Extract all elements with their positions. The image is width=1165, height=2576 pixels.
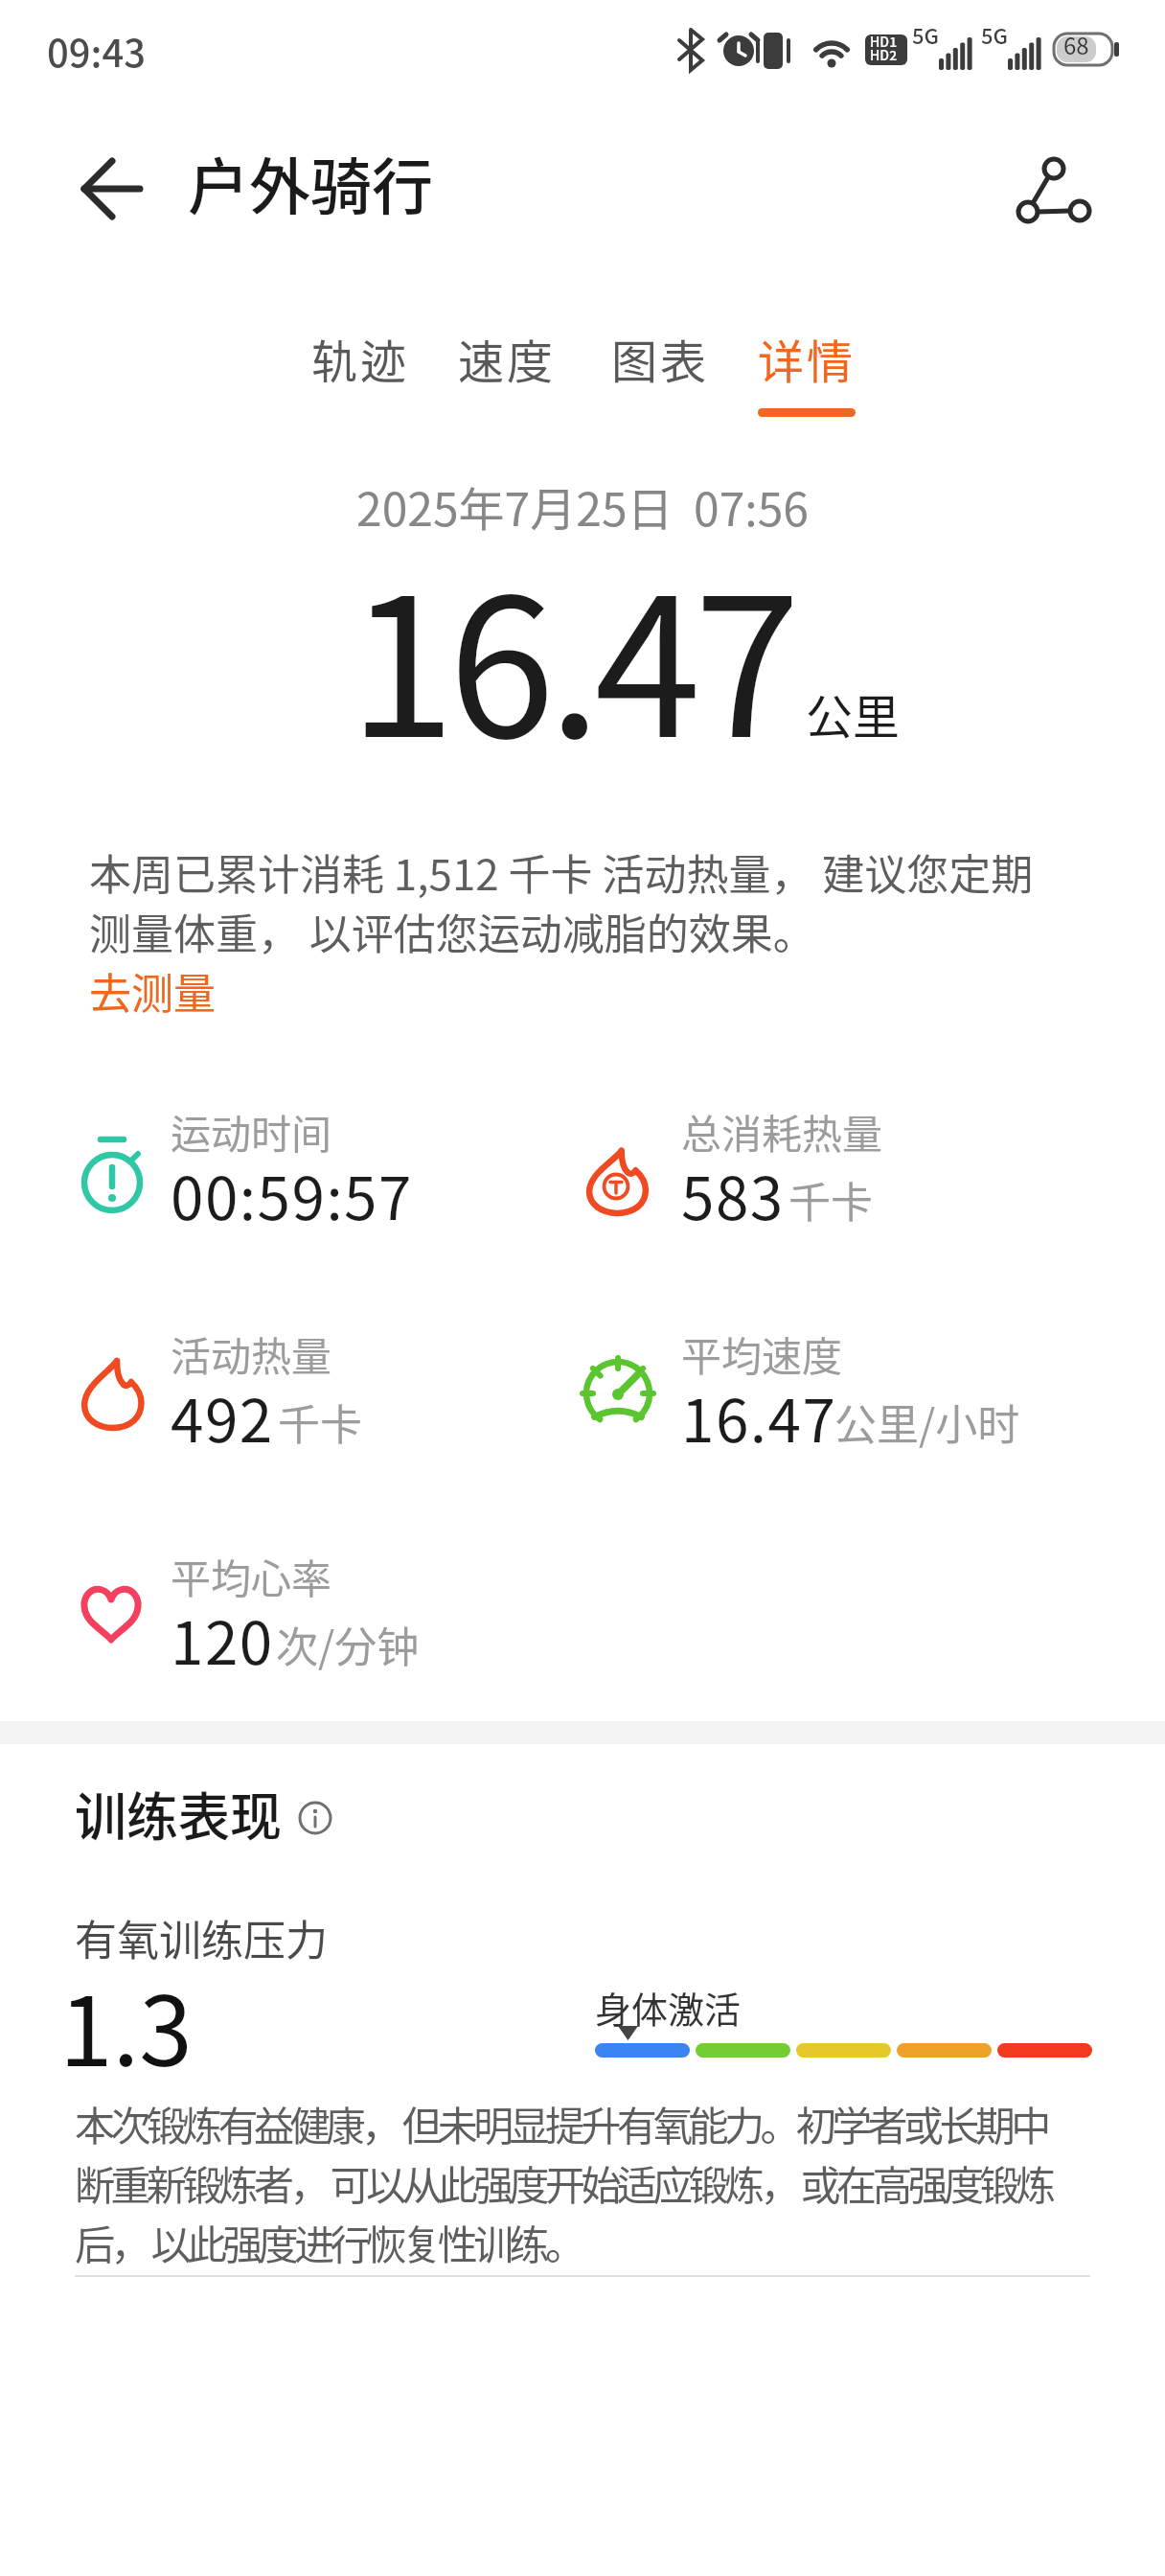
staticText: 公里/小时 <box>834 1391 1020 1453</box>
staticText: 5G <box>981 19 1008 50</box>
staticText: 平均心率 <box>171 1547 332 1605</box>
staticText: 本次锻炼有益健康， 但未明显提升有氧能力。初学者或长期中 <box>75 2094 1047 2152</box>
staticText: HD1 <box>870 32 898 51</box>
staticText: 平均速度 <box>681 1324 843 1383</box>
staticText: 2025年7月25日 07:56 <box>0 472 1165 540</box>
button[interactable] <box>987 134 1102 240</box>
button[interactable]: 去测量 <box>84 954 228 1012</box>
staticText: 断重新锻炼者， 可以从此强度开始适应锻炼， 或在高强度锻炼 <box>75 2153 1052 2212</box>
button[interactable] <box>57 144 163 240</box>
staticText: 详情 <box>758 325 857 392</box>
staticText: 16.47 <box>349 515 794 793</box>
staticText: 后， 以此强度进行恢复性训练。 <box>75 2213 582 2271</box>
button[interactable]: 速度 <box>439 311 575 422</box>
staticText: 5G <box>912 19 939 50</box>
staticText: 583 <box>681 1151 785 1237</box>
button[interactable] <box>287 1788 347 1848</box>
staticText: 120 <box>171 1596 274 1682</box>
staticText: 训练表现 <box>75 1776 282 1851</box>
staticText: 00:59:57 <box>171 1151 413 1237</box>
staticText: 本周已累计消耗 1,512 千卡 活动热量， 建议您定期 <box>89 841 1034 903</box>
staticText: 测量体重， 以评估您运动减脂的效果。 <box>89 901 815 962</box>
staticText: 68 <box>1063 28 1089 61</box>
staticText: HD2 <box>870 45 898 64</box>
staticText: 次/分钟 <box>276 1614 420 1675</box>
staticText: 速度 <box>458 325 557 392</box>
staticText: 去测量 <box>89 960 216 1018</box>
staticText: 有氧训练压力 <box>75 1907 328 1968</box>
button[interactable]: 详情 <box>739 311 875 422</box>
staticText: 图表 <box>611 325 710 392</box>
staticText: 千卡 <box>278 1391 362 1453</box>
staticText: 运动时间 <box>171 1102 332 1161</box>
staticText: 轨迹 <box>311 325 410 392</box>
staticText: 千卡 <box>788 1169 873 1230</box>
staticText: 总消耗热量 <box>681 1102 883 1161</box>
staticText: 身体激活 <box>595 1981 742 2034</box>
staticText: 16.47 <box>681 1373 837 1460</box>
staticText: 活动热量 <box>171 1324 332 1383</box>
staticText: 1.3 <box>59 1955 193 2094</box>
staticText: 户外骑行 <box>188 138 433 227</box>
button[interactable]: 轨迹 <box>292 311 428 422</box>
staticText: 492 <box>171 1373 274 1460</box>
button[interactable]: 图表 <box>592 311 728 422</box>
staticText: 09:43 <box>47 23 147 79</box>
staticText: 公里 <box>806 679 901 747</box>
